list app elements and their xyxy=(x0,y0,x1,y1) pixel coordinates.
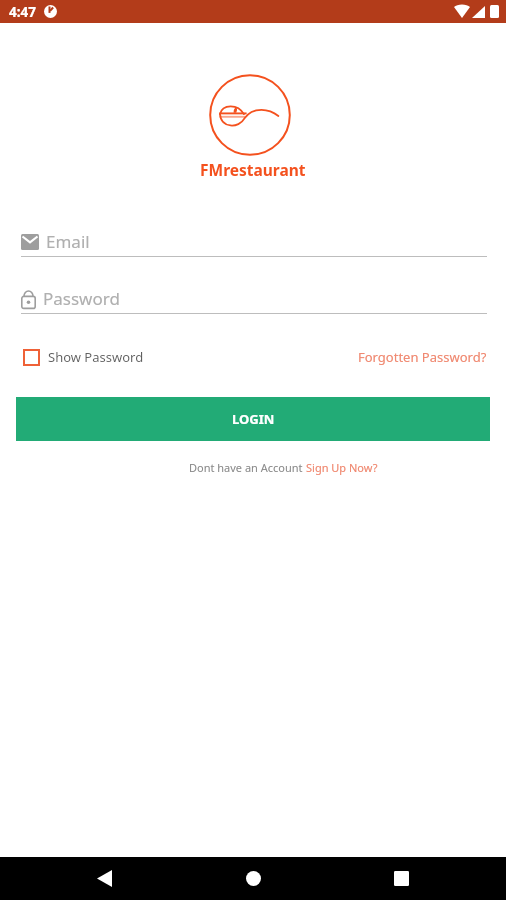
staticText: Show Password xyxy=(48,348,144,366)
button[interactable]: Email xyxy=(21,230,487,257)
button[interactable]: Forgotten Password? xyxy=(358,348,487,366)
button[interactable]: Recents xyxy=(369,857,433,900)
staticText: Email xyxy=(46,230,90,253)
button[interactable]: Show Password xyxy=(23,348,144,366)
button[interactable]: Sign Up Now? xyxy=(306,460,378,475)
button[interactable]: LOGIN xyxy=(16,397,490,441)
staticText: Password xyxy=(43,287,120,310)
button[interactable]: Home xyxy=(221,857,285,900)
staticText: 4:47 xyxy=(9,3,36,21)
staticText: Dont have an Account xyxy=(189,460,306,475)
button[interactable]: Password xyxy=(21,287,487,314)
staticText: LOGIN xyxy=(232,410,275,428)
staticText: FMrestaurant xyxy=(200,159,306,180)
button[interactable]: Back xyxy=(72,857,136,900)
